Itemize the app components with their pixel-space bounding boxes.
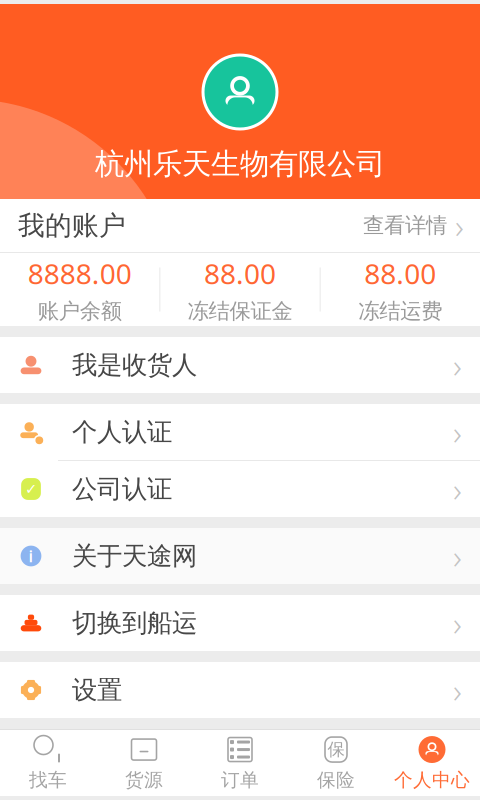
staticText: 切换到船运 (72, 607, 197, 638)
button[interactable]: 个人中心 (384, 731, 480, 795)
staticText: › (453, 343, 462, 387)
staticText: 公司认证 (72, 473, 172, 504)
staticText: 账户余额 (38, 298, 122, 324)
staticText: › (455, 203, 464, 248)
staticText: 找车 (29, 768, 67, 791)
button[interactable]: 设置 (0, 662, 480, 718)
staticText: › (453, 668, 462, 712)
staticText: 冻结运费 (358, 298, 442, 324)
button[interactable]: 我是收货人 (0, 337, 480, 393)
staticText: 杭州乐天生物有限公司 (95, 146, 385, 182)
button[interactable]: 我的账户 (0, 199, 480, 252)
button[interactable]: 切换到船运 (0, 595, 480, 651)
button[interactable]: 订单 (192, 731, 288, 795)
button[interactable]: 保 (288, 731, 384, 795)
staticText: › (453, 410, 462, 454)
staticText: 8888.00 (28, 255, 132, 292)
staticText: 货源 (125, 768, 163, 791)
staticText: 保 (327, 739, 344, 760)
staticText: 设置 (72, 674, 122, 705)
staticText: 查看详情 (363, 212, 447, 239)
button[interactable]: 货源 (96, 731, 192, 795)
staticText: 个人认证 (72, 416, 172, 447)
staticText: 我是收货人 (72, 349, 197, 380)
button[interactable]: 个人认证 (0, 404, 480, 461)
staticText: 个人中心 (394, 768, 470, 791)
button[interactable]: 找车 (0, 731, 96, 795)
staticText: 88.00 (204, 255, 276, 292)
staticText: ✓ (25, 481, 37, 497)
staticText: 保险 (317, 768, 355, 791)
button[interactable]: i (0, 528, 480, 584)
button[interactable]: ✓ (0, 461, 480, 517)
staticText: 我的账户 (18, 209, 126, 242)
staticText: i (28, 545, 33, 567)
staticText: 关于天途网 (72, 540, 197, 571)
staticText: › (453, 467, 462, 511)
staticText: › (453, 601, 462, 645)
staticText: 88.00 (364, 255, 436, 292)
staticText: 冻结保证金 (187, 298, 292, 324)
staticText: › (453, 534, 462, 578)
staticText: 订单 (221, 768, 259, 791)
